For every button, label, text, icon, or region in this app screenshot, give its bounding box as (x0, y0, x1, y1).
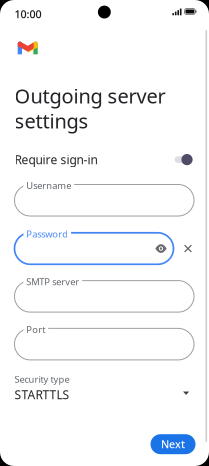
button[interactable]: Next (150, 434, 195, 454)
button[interactable]: Clear text (178, 239, 198, 259)
staticText: Next (161, 437, 185, 451)
button[interactable]: Username (14, 184, 194, 216)
button[interactable]: Require sign-in (15, 151, 193, 169)
button[interactable]: Show password (151, 239, 171, 259)
staticText: 10:00 (15, 7, 42, 21)
staticText: Password (26, 228, 68, 240)
staticText: Username (26, 179, 71, 192)
staticText: Outgoing server (15, 82, 166, 109)
staticText: SMTP server (26, 275, 79, 288)
button[interactable]: STARTTLS (15, 386, 194, 402)
staticText: Port (26, 323, 45, 336)
staticText: Require sign-in (15, 152, 98, 167)
button[interactable]: SMTP server (14, 281, 194, 312)
staticText: Security type (15, 373, 70, 385)
button[interactable]: Port (14, 328, 194, 360)
staticText: settings (15, 107, 89, 134)
staticText: STARTTLS (15, 386, 70, 402)
button[interactable]: Password (14, 233, 173, 264)
